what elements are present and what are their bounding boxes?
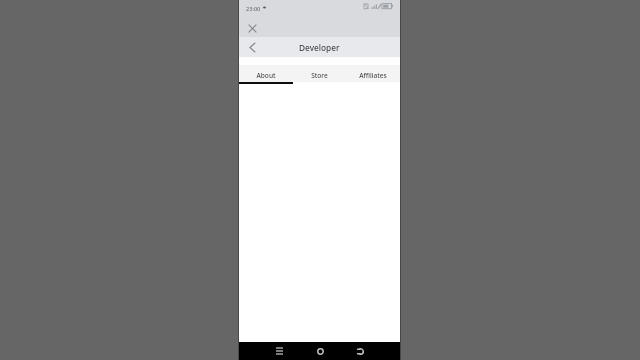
button[interactable]: About — [239, 65, 292, 82]
staticText: 23:00 — [246, 5, 261, 13]
staticText: Affiliates — [359, 71, 387, 80]
button[interactable]: Store — [292, 65, 346, 82]
button[interactable]: Back — [350, 342, 370, 360]
staticText: Developer — [299, 42, 340, 53]
button[interactable]: Close — [244, 20, 260, 36]
staticText: About — [256, 71, 276, 80]
staticText: Store — [311, 71, 328, 80]
button[interactable]: Home — [310, 342, 330, 360]
button[interactable]: Navigate up — [244, 39, 260, 55]
button[interactable]: Affiliates — [346, 65, 400, 82]
button[interactable]: Recent apps — [269, 342, 289, 360]
